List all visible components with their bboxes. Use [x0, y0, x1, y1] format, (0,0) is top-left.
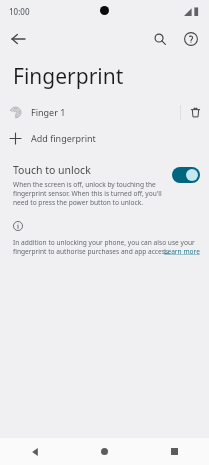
- button[interactable]: Add fingerprint: [0, 125, 209, 151]
- button[interactable]: Finger 1: [0, 99, 209, 125]
- button[interactable]: Home: [69, 438, 139, 465]
- button[interactable]: Delete Finger 1: [181, 99, 209, 125]
- button[interactable]: Touch to unlock: [0, 163, 209, 207]
- staticText: Fingerprint: [13, 62, 124, 91]
- staticText: Finger 1: [31, 106, 66, 118]
- button[interactable]: Help: [177, 25, 205, 53]
- button[interactable]: Back: [4, 25, 32, 53]
- button[interactable]: Recent apps: [139, 438, 209, 465]
- staticText: When the screen is off, unlock by touchi…: [13, 180, 164, 207]
- button[interactable]: Back: [0, 438, 69, 465]
- button[interactable]: Learn more: [164, 247, 200, 256]
- staticText: Add fingerprint: [31, 132, 96, 144]
- staticText: 10:00: [9, 6, 30, 17]
- staticText: Touch to unlock: [13, 163, 91, 177]
- staticText: In addition to unlocking your phone, you…: [13, 238, 200, 256]
- button[interactable]: Search: [146, 25, 174, 53]
- button[interactable]: Touch to unlock toggle: [172, 167, 200, 183]
